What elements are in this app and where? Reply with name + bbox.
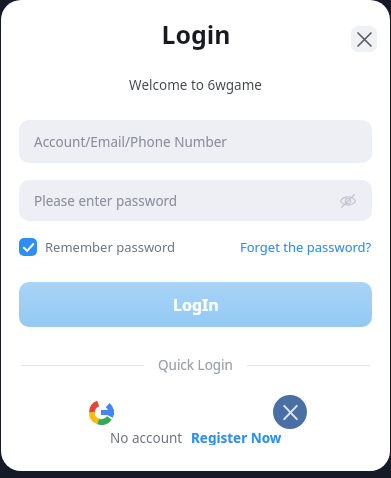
staticText: Login	[161, 17, 231, 51]
button[interactable]: LogIn	[19, 282, 372, 327]
staticText: Forget the password?	[240, 238, 372, 256]
staticText: Register Now	[191, 429, 282, 445]
staticText: Account/Email/Phone Number	[34, 133, 227, 151]
button[interactable]: Forget the password?	[240, 238, 372, 256]
button[interactable]: Show password	[336, 189, 360, 213]
staticText: No account	[110, 429, 183, 445]
button[interactable]: Sign in with X	[273, 395, 307, 429]
button[interactable]: Remember password	[19, 238, 176, 256]
staticText: Quick Login	[158, 356, 233, 374]
button[interactable]: Account/Email/Phone Number	[19, 120, 372, 163]
button[interactable]: Close	[351, 26, 377, 52]
staticText: LogIn	[173, 294, 219, 316]
staticText: Remember password	[45, 238, 176, 256]
button[interactable]: Sign in with Google	[84, 395, 118, 429]
button[interactable]: Register Now	[191, 429, 282, 445]
staticText: Please enter password	[34, 192, 178, 210]
button[interactable]: Please enter password	[19, 180, 372, 221]
staticText: Welcome to 6wgame	[1, 76, 390, 94]
